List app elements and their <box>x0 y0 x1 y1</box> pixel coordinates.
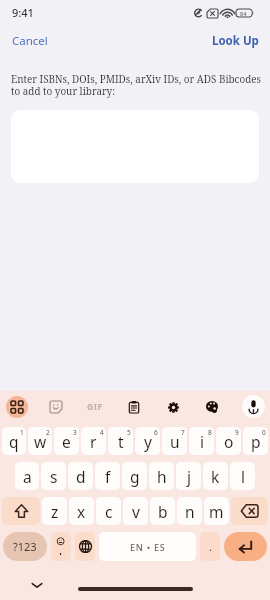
staticText: 1 <box>20 428 24 437</box>
button[interactable]: x <box>69 497 94 525</box>
button[interactable]: Voice input <box>242 395 265 418</box>
button[interactable]: n <box>177 497 202 525</box>
button[interactable]: y <box>135 427 160 455</box>
staticText: o <box>224 431 234 452</box>
button[interactable]: Enter <box>224 532 267 561</box>
staticText: t <box>118 431 124 452</box>
button[interactable]: j <box>176 462 201 490</box>
staticText: 0 <box>262 428 266 437</box>
button[interactable]: l <box>230 462 255 490</box>
button[interactable]: Toolbar menu <box>6 396 28 418</box>
button[interactable]: w <box>28 427 52 455</box>
button[interactable]: Shift <box>2 497 40 525</box>
button[interactable]: GIF <box>82 396 108 418</box>
button[interactable]: Settings <box>162 396 184 418</box>
staticText: 4 <box>100 428 104 437</box>
staticText: c <box>105 501 113 522</box>
button[interactable]: k <box>203 462 228 490</box>
staticText: 2 <box>46 428 50 437</box>
button[interactable]: e <box>54 427 79 455</box>
button[interactable]: Change language <box>75 532 95 561</box>
staticText: s <box>50 466 58 487</box>
staticText: v <box>132 501 140 522</box>
staticText: w <box>34 431 47 452</box>
staticText: 8 <box>208 428 212 437</box>
button[interactable]: EN • ES <box>99 532 196 561</box>
staticText: h <box>157 466 167 487</box>
staticText: p <box>251 431 261 452</box>
button[interactable]: t <box>108 427 133 455</box>
button[interactable]: Emoji <box>51 532 71 561</box>
button[interactable]: m <box>204 497 229 525</box>
staticText: m <box>209 501 224 522</box>
staticText: 5 <box>127 428 131 437</box>
button[interactable]: q <box>2 427 26 455</box>
staticText: GIF <box>87 401 103 413</box>
button[interactable]: o <box>216 427 241 455</box>
staticText: b <box>158 501 168 522</box>
staticText: g <box>130 466 140 487</box>
staticText: x <box>77 501 86 522</box>
button[interactable]: f <box>95 462 120 490</box>
button[interactable]: v <box>123 497 148 525</box>
staticText: k <box>211 466 220 487</box>
staticText: n <box>185 501 195 522</box>
button[interactable]: u <box>162 427 187 455</box>
button[interactable]: b <box>150 497 175 525</box>
button[interactable]: s <box>41 462 66 490</box>
staticText: 6 <box>154 428 158 437</box>
staticText: q <box>9 431 19 452</box>
staticText: j <box>187 466 191 487</box>
staticText: f <box>105 466 111 487</box>
staticText: y <box>144 431 152 452</box>
staticText: i <box>200 431 204 452</box>
staticText: l <box>241 466 245 487</box>
staticText: 7 <box>181 428 185 437</box>
staticText: . <box>209 539 212 554</box>
staticText: EN • ES <box>130 541 166 553</box>
button[interactable]: Clipboard <box>123 396 145 418</box>
staticText: d <box>76 466 86 487</box>
button[interactable]: r <box>81 427 106 455</box>
button[interactable]: Backspace <box>231 497 268 525</box>
button[interactable]: g <box>122 462 147 490</box>
staticText: Look Up <box>212 33 259 49</box>
button[interactable]: ?123 <box>3 532 47 561</box>
staticText: ?123 <box>13 539 37 554</box>
button[interactable]: i <box>189 427 214 455</box>
button[interactable]: Hide keyboard <box>24 572 50 598</box>
staticText: e <box>62 431 71 452</box>
button[interactable]: Themes <box>201 396 223 418</box>
staticText: z <box>51 501 59 522</box>
button[interactable]: Stickers <box>45 396 67 418</box>
staticText: 3 <box>73 428 77 437</box>
staticText: u <box>170 431 180 452</box>
button[interactable]: p <box>243 427 268 455</box>
button[interactable]: a <box>15 462 39 490</box>
button[interactable]: Look Up <box>212 33 259 49</box>
button[interactable]: h <box>149 462 174 490</box>
staticText: Enter ISBNs, DOIs, PMIDs, arXiv IDs, or … <box>11 72 264 98</box>
staticText: a <box>23 466 32 487</box>
button[interactable]: . <box>200 532 220 561</box>
staticText: 84 <box>240 10 247 17</box>
staticText: r <box>90 431 97 452</box>
staticText: Cancel <box>12 33 48 49</box>
button[interactable]: c <box>96 497 121 525</box>
button[interactable]: z <box>42 497 67 525</box>
button[interactable]: d <box>68 462 93 490</box>
staticText: 9 <box>235 428 239 437</box>
staticText: 9:41 <box>12 5 34 20</box>
button[interactable]: Cancel <box>12 33 48 49</box>
